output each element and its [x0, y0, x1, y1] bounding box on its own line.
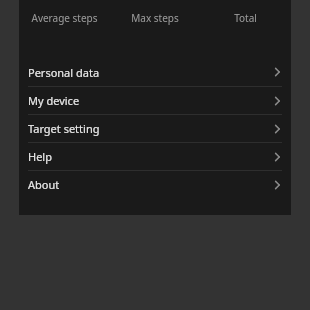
staticText: Target setting	[28, 121, 270, 136]
other: About	[270, 178, 284, 192]
button[interactable]: Target setting	[19, 115, 291, 142]
button[interactable]: About	[19, 171, 291, 198]
staticText: About	[28, 177, 270, 192]
button[interactable]: Personal data	[19, 58, 291, 86]
staticText: Personal data	[28, 65, 270, 80]
button[interactable]: Help	[19, 143, 291, 170]
other: Personal data	[270, 65, 284, 79]
other: Help	[270, 150, 284, 164]
staticText: Max steps	[131, 11, 179, 25]
other: My device	[270, 94, 284, 108]
staticText: My device	[28, 93, 270, 108]
other: Target setting	[270, 122, 284, 136]
button[interactable]: My device	[19, 87, 291, 114]
staticText: Total	[234, 11, 257, 25]
staticText: Help	[28, 149, 270, 164]
staticText: Average steps	[31, 11, 98, 25]
